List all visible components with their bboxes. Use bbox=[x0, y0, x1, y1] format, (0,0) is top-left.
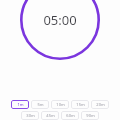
button[interactable]: 90m bbox=[81, 111, 99, 120]
staticText: 05:00 bbox=[43, 11, 77, 29]
staticText: 30m bbox=[26, 113, 35, 118]
staticText: 20m bbox=[96, 102, 105, 107]
button[interactable]: 60m bbox=[61, 111, 79, 120]
staticText: 10m bbox=[56, 102, 65, 107]
staticText: 45m bbox=[46, 113, 55, 118]
button[interactable]: 10m bbox=[51, 100, 69, 109]
staticText: 15m bbox=[76, 102, 85, 107]
button[interactable]: 15m bbox=[71, 100, 89, 109]
button[interactable]: 20m bbox=[91, 100, 109, 109]
button[interactable]: Timer progress bbox=[20, 0, 100, 60]
button[interactable]: 5m bbox=[31, 100, 49, 109]
button[interactable]: 30m bbox=[21, 111, 39, 120]
button[interactable]: 45m bbox=[41, 111, 59, 120]
staticText: 90m bbox=[86, 113, 95, 118]
staticText: 60m bbox=[66, 113, 75, 118]
staticText: 1m bbox=[17, 102, 24, 107]
staticText: 5m bbox=[37, 102, 44, 107]
button[interactable]: 1m bbox=[11, 100, 29, 109]
